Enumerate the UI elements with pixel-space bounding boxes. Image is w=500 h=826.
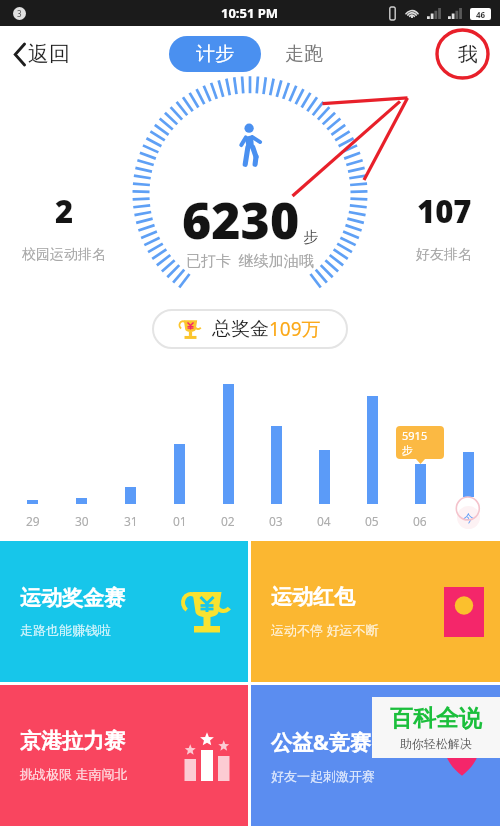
button[interactable]: 02 — [204, 364, 252, 529]
staticText: 03 — [269, 513, 283, 529]
staticText: 走跑 — [285, 42, 323, 66]
staticText: 29 — [26, 513, 40, 529]
staticText: 运动奖金赛 — [20, 585, 125, 611]
staticText: 5915步 — [402, 428, 438, 457]
staticText: 107 — [417, 190, 472, 232]
staticText: 总奖金 — [212, 317, 269, 341]
button[interactable]: 29 — [8, 364, 57, 529]
other: Walking — [235, 124, 265, 166]
staticText: 返回 — [28, 41, 70, 67]
other: Charity — [440, 734, 484, 778]
button[interactable]: 运动奖金赛 — [0, 541, 248, 682]
staticText: 02 — [221, 513, 235, 529]
staticText: 05 — [365, 513, 379, 529]
staticText: 京港拉力赛 — [20, 728, 125, 754]
button[interactable]: 5915步 — [396, 364, 444, 529]
staticText: 好友排名 — [416, 246, 472, 264]
staticText: 6230 — [182, 186, 300, 254]
staticText: 10:51 PM — [221, 4, 279, 22]
staticText: 校园运动排名 — [22, 246, 106, 264]
staticText: 109万 — [269, 316, 321, 342]
button[interactable]: 返回 — [8, 33, 76, 75]
staticText: 31 — [124, 513, 138, 529]
staticText: 01 — [173, 513, 187, 529]
staticText: 公益&竞赛 — [271, 728, 371, 757]
button[interactable]: 05 — [348, 364, 396, 529]
staticText: 04 — [317, 513, 331, 529]
button[interactable]: 运动红包 — [251, 541, 500, 682]
staticText: 我 — [458, 42, 478, 67]
button[interactable]: 04 — [300, 364, 348, 529]
staticText: 06 — [413, 513, 427, 529]
other: Red packet — [444, 587, 484, 637]
button[interactable]: 30 — [57, 364, 106, 529]
staticText: 百科全说 — [390, 704, 482, 733]
staticText: 今 — [463, 511, 474, 525]
staticText: 30 — [75, 513, 89, 529]
staticText: 助你轻松解决 — [400, 736, 472, 751]
staticText: 运动红包 — [271, 584, 355, 610]
staticText: 3 — [17, 8, 22, 19]
staticText: 计步 — [196, 42, 234, 66]
button[interactable]: 今 — [444, 364, 492, 529]
button[interactable]: 03 — [252, 364, 300, 529]
button[interactable]: 京港拉力赛 — [0, 685, 248, 826]
button[interactable]: 公益&竞赛 — [251, 685, 500, 826]
staticText: 运动不停 好运不断 — [271, 621, 379, 639]
button[interactable]: 走跑 — [277, 36, 331, 72]
button[interactable]: 2 — [22, 190, 106, 264]
staticText: 46 — [476, 9, 486, 20]
button[interactable]: 31 — [106, 364, 155, 529]
button[interactable]: 总奖金 — [157, 310, 343, 348]
staticText: 2 — [55, 190, 74, 232]
staticText: 步 — [303, 228, 318, 247]
button[interactable]: 107 — [416, 190, 472, 264]
staticText: 走路也能赚钱啦 — [20, 622, 111, 638]
button[interactable]: 01 — [155, 364, 204, 529]
button[interactable]: 计步 — [169, 36, 261, 72]
other: Profile highlight — [434, 27, 497, 81]
button[interactable]: 我 — [452, 36, 484, 73]
staticText: 挑战极限 走南闯北 — [20, 765, 128, 783]
staticText: 好友一起刺激开赛 — [271, 768, 375, 784]
other: Rally — [182, 731, 232, 781]
staticText: 已打卡 继续加油哦 — [186, 250, 314, 270]
